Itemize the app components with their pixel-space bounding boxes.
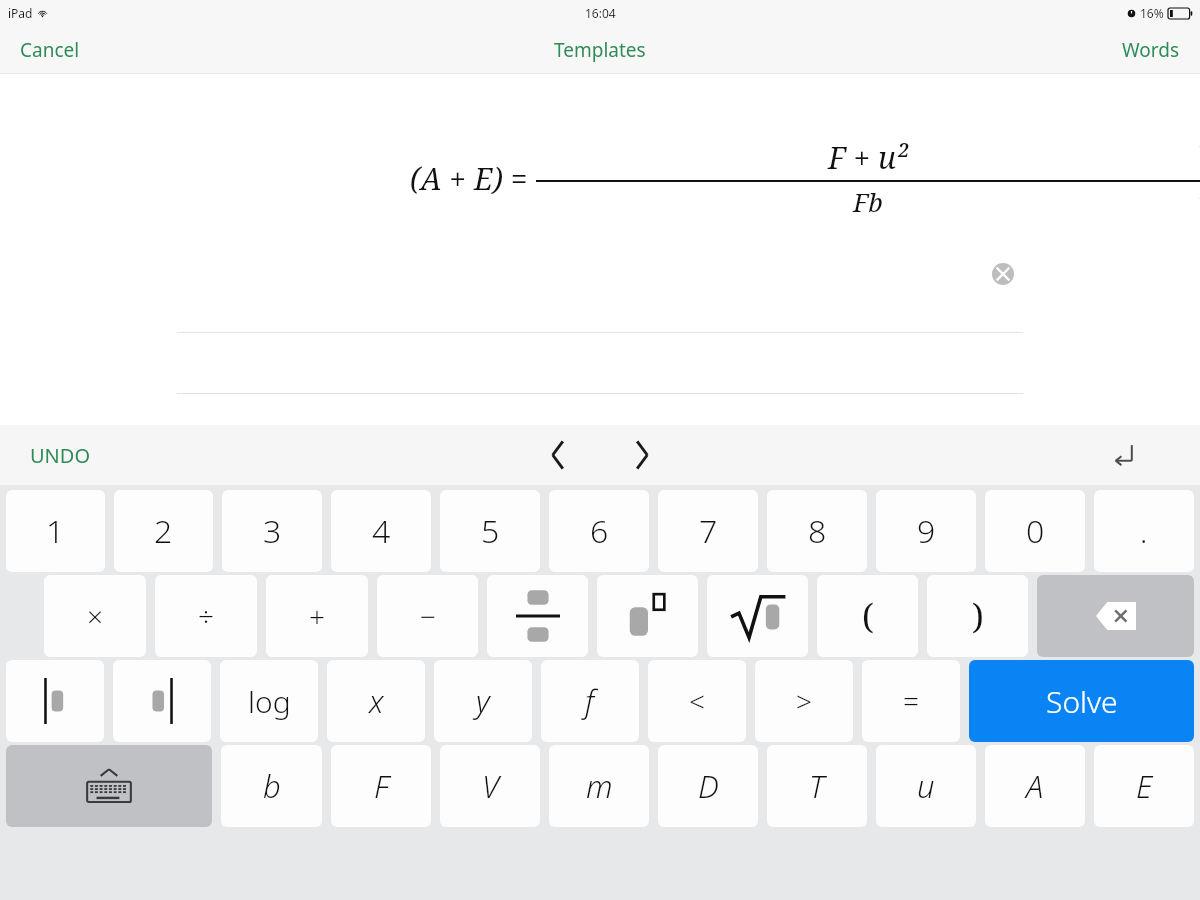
staticText: ×	[87, 597, 103, 635]
button[interactable]: T	[767, 745, 867, 827]
button[interactable]: A	[985, 745, 1085, 827]
button[interactable]: Words	[1102, 27, 1200, 73]
button[interactable]: ÷	[155, 575, 257, 657]
button[interactable]: Exponent	[597, 575, 698, 657]
staticText: +	[309, 597, 325, 635]
staticText: −	[420, 597, 436, 635]
staticText: =	[903, 682, 919, 720]
staticText: f	[585, 680, 595, 722]
button[interactable]: b	[221, 745, 322, 827]
button[interactable]: Previous	[523, 426, 593, 484]
staticText: 1	[46, 509, 65, 553]
button[interactable]: 1	[6, 490, 105, 572]
staticText: Templates	[554, 37, 646, 63]
button[interactable]: 2	[114, 490, 213, 572]
staticText: b	[263, 765, 281, 807]
staticText: Solve	[1046, 681, 1118, 722]
staticText: D	[698, 765, 719, 807]
button[interactable]: UNDO	[22, 434, 99, 477]
staticText: .	[1140, 511, 1148, 552]
staticText: log	[248, 681, 291, 722]
staticText: u	[917, 765, 935, 807]
button[interactable]: E	[1094, 745, 1194, 827]
button[interactable]: x	[327, 660, 425, 742]
button[interactable]: Fraction	[487, 575, 588, 657]
staticText: E	[1136, 765, 1153, 807]
button[interactable]: ×	[44, 575, 146, 657]
staticText: <	[689, 682, 705, 720]
button[interactable]: Cancel	[0, 27, 100, 73]
staticText: 3	[263, 509, 282, 553]
staticText: Fb	[853, 184, 883, 219]
staticText: 16:04	[585, 5, 616, 21]
button[interactable]: Square root	[707, 575, 808, 657]
staticText: 4	[372, 509, 391, 553]
staticText: 8	[808, 509, 827, 553]
staticText: 9	[917, 509, 936, 553]
button[interactable]: log	[220, 660, 318, 742]
button[interactable]: Hide keyboard	[6, 745, 212, 827]
staticText: m	[586, 765, 613, 807]
button[interactable]: >	[755, 660, 853, 742]
staticText: 5	[481, 509, 500, 553]
button[interactable]: f	[541, 660, 639, 742]
button[interactable]: =	[862, 660, 960, 742]
button[interactable]: 9	[876, 490, 976, 572]
staticText: 0	[1026, 509, 1045, 553]
staticText: V	[482, 765, 499, 807]
button[interactable]: Next	[607, 426, 677, 484]
staticText: iPad	[8, 5, 33, 21]
staticText: (A + E) =	[410, 158, 528, 199]
staticText: (	[862, 593, 874, 639]
button[interactable]: Left bar	[6, 660, 104, 742]
button[interactable]: .	[1094, 490, 1194, 572]
staticText: ÷	[198, 597, 214, 635]
button[interactable]: −	[377, 575, 478, 657]
button[interactable]: Right bar	[113, 660, 211, 742]
button[interactable]: Templates	[538, 27, 662, 73]
button[interactable]: 3	[222, 490, 322, 572]
staticText: 16%	[1140, 5, 1164, 21]
button[interactable]: 0	[985, 490, 1085, 572]
button[interactable]: 7	[658, 490, 758, 572]
button[interactable]: V	[440, 745, 540, 827]
button[interactable]: +	[266, 575, 368, 657]
button[interactable]: 8	[767, 490, 867, 572]
staticText: 6	[590, 509, 609, 553]
button[interactable]: Backspace	[1037, 575, 1194, 657]
staticText: Cancel	[20, 37, 80, 63]
button[interactable]: <	[648, 660, 746, 742]
button[interactable]: D	[658, 745, 758, 827]
button[interactable]: m	[549, 745, 649, 827]
button[interactable]: y	[434, 660, 532, 742]
staticText: Words	[1122, 37, 1180, 63]
button[interactable]: 4	[331, 490, 431, 572]
button[interactable]: u	[876, 745, 976, 827]
button[interactable]: F	[331, 745, 431, 827]
staticText: )	[972, 593, 984, 639]
staticText: x	[369, 680, 384, 722]
button[interactable]: Solve	[969, 660, 1194, 742]
staticText: F + u²	[828, 137, 909, 178]
staticText: 7	[699, 509, 718, 553]
button[interactable]: )	[927, 575, 1028, 657]
button[interactable]: 6	[549, 490, 649, 572]
staticText: 2	[154, 509, 173, 553]
staticText: F	[374, 765, 389, 807]
staticText: y	[476, 680, 490, 722]
button[interactable]: Return	[1096, 427, 1152, 483]
staticText: A	[1026, 765, 1044, 807]
button[interactable]: (	[817, 575, 918, 657]
button[interactable]: Clear equation	[988, 259, 1018, 289]
staticText: UNDO	[30, 442, 91, 469]
button[interactable]: 5	[440, 490, 540, 572]
staticText: T	[809, 765, 825, 807]
staticText: >	[796, 682, 812, 720]
